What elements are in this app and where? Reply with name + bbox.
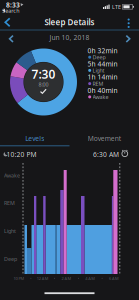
staticText: Levels [25,134,44,143]
staticText: Awake [93,93,109,100]
staticText: Sleep Details [44,17,94,27]
button[interactable]: Levels [0,132,69,145]
staticText: 5h 44min [87,59,117,68]
staticText: 6 AM [109,276,119,281]
staticText: REM [93,80,104,87]
staticText: 4 AM [85,276,95,281]
staticText: Search [2,7,19,14]
staticText: 10 PM [13,276,24,281]
staticText: LTE [112,3,121,10]
staticText: Awake [4,172,20,179]
button[interactable]: Back [3,17,11,27]
staticText: Jun 10, 2018 [49,33,89,42]
button[interactable]: Movement [69,132,139,145]
staticText: 1h 14min [87,73,117,81]
button[interactable]: More options [126,18,132,29]
staticText: Movement [88,134,121,143]
staticText: Light [93,67,105,74]
button[interactable]: Previous day [8,35,15,43]
staticText: 10:20 PM [6,150,36,159]
staticText: Deep [4,255,17,263]
staticText: 8:00 [38,81,48,88]
staticText: 6:30 AM [93,150,119,159]
staticText: REM [4,199,15,207]
staticText: 8:33 [6,1,20,9]
staticText: 2 AM [61,276,71,281]
button[interactable]: Next day [124,35,131,43]
staticText: 12 AM [37,276,49,281]
staticText: 0h 32min [87,46,117,55]
staticText: 0h 40min [87,86,117,95]
staticText: Deep [93,54,106,61]
staticText: 7:30 [31,66,55,82]
staticText: Light [4,227,16,235]
